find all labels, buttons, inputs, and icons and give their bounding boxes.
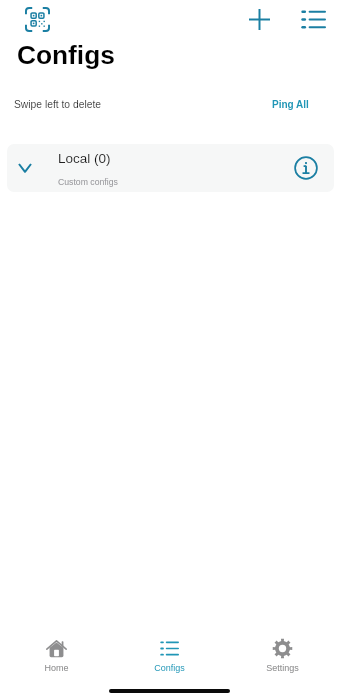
staticText: Ping All <box>272 99 309 110</box>
button[interactable]: Add config <box>243 3 275 35</box>
button[interactable]: Home <box>0 631 113 677</box>
button[interactable]: Scan QR code <box>21 3 53 35</box>
staticText: Settings <box>266 663 299 673</box>
staticText: Custom configs <box>58 177 118 187</box>
button[interactable]: Info <box>282 144 334 192</box>
staticText: Local (0) <box>58 151 111 166</box>
staticText: Configs <box>17 40 115 69</box>
staticText: Home <box>44 663 69 673</box>
staticText: Swipe left to delete <box>14 99 102 111</box>
button[interactable]: Sort configs <box>297 3 329 35</box>
button[interactable]: Settings <box>226 631 339 677</box>
button[interactable]: Local (0) <box>7 144 334 192</box>
button[interactable]: Ping All <box>266 93 315 116</box>
staticText: Configs <box>154 663 185 673</box>
button[interactable]: Configs <box>113 631 226 677</box>
